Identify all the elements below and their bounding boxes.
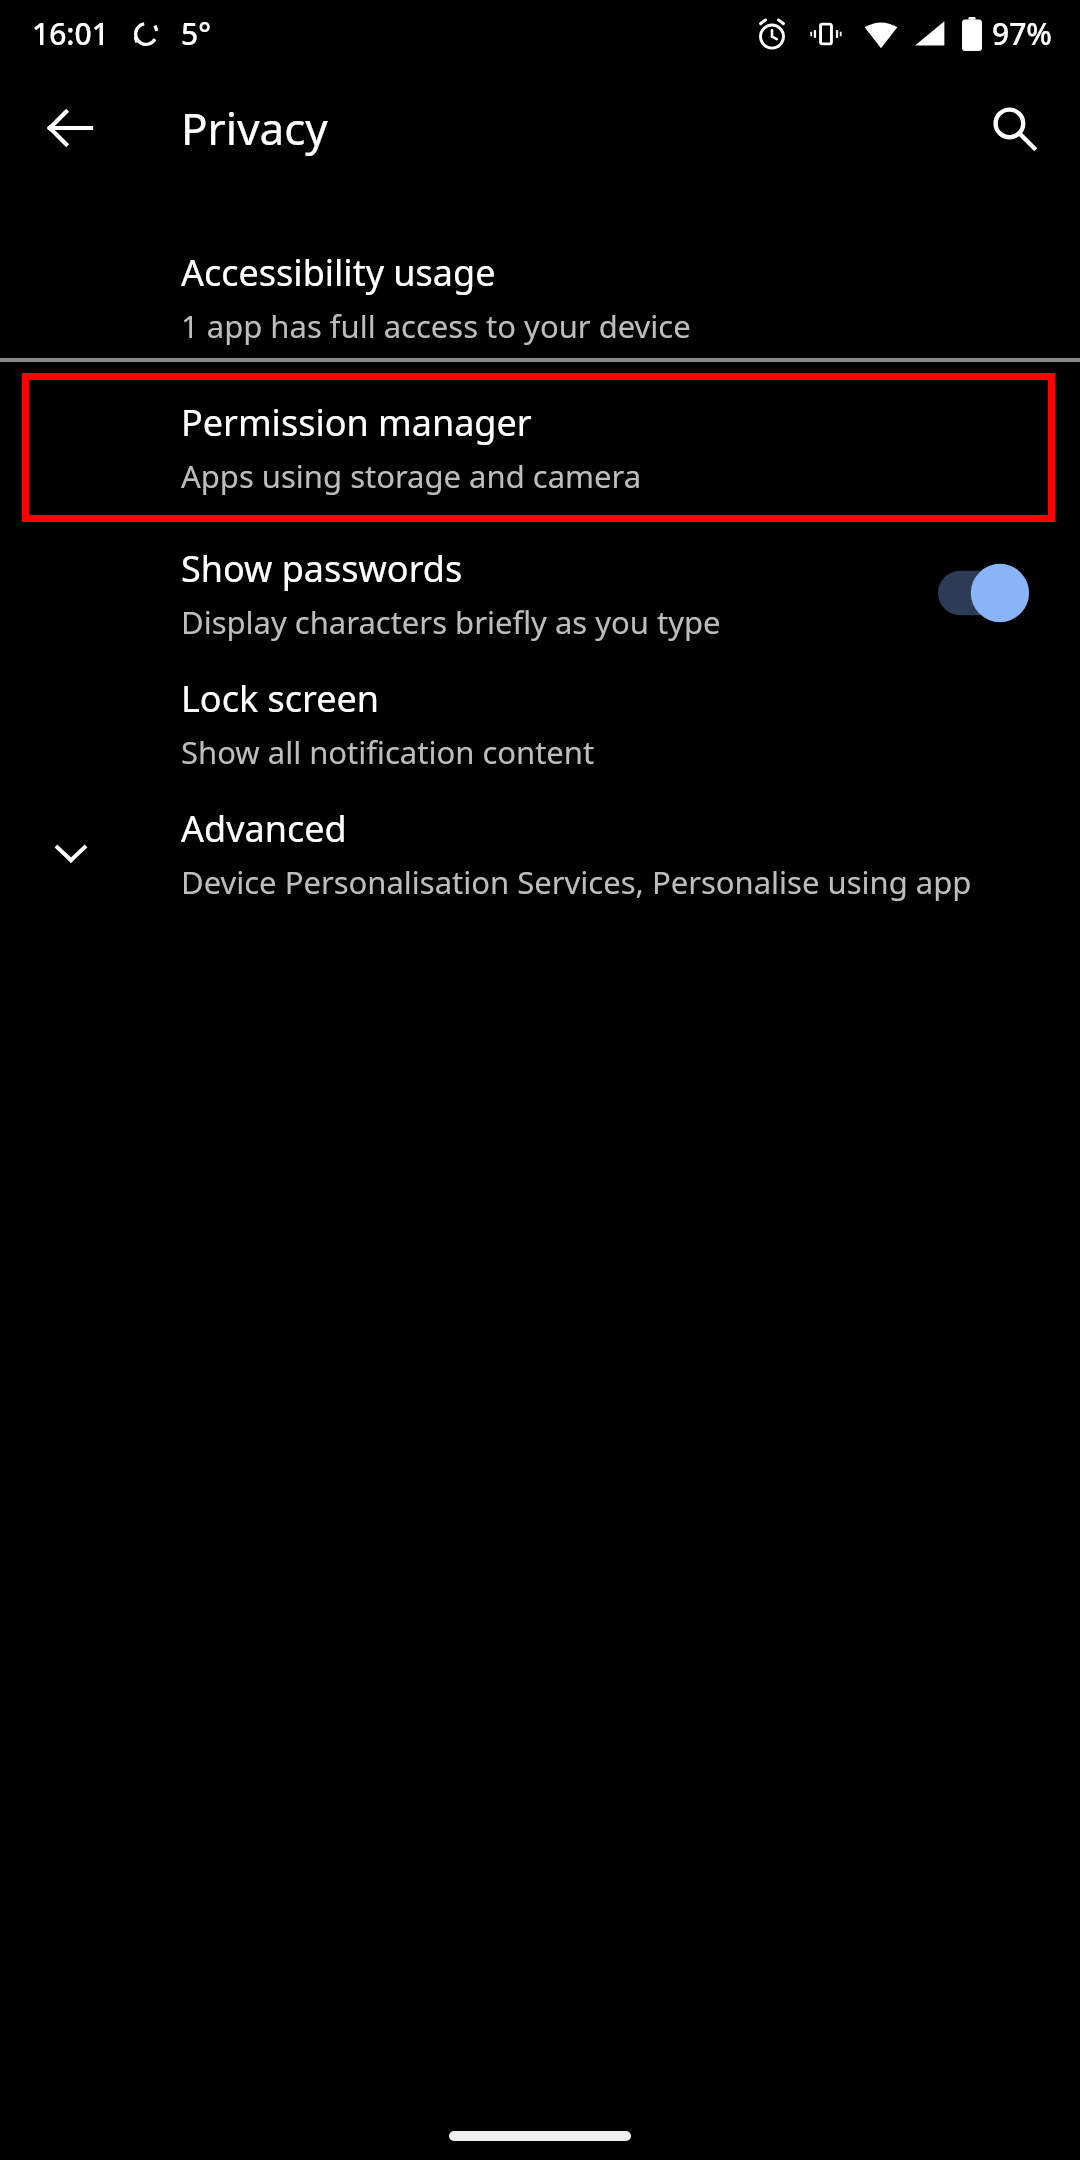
staticText: Privacy	[181, 98, 328, 158]
button[interactable]: Accessibility usage	[0, 236, 1080, 358]
staticText: Permission manager	[181, 398, 532, 447]
button[interactable]: Show passwords toggle	[938, 562, 1030, 624]
staticText: 5°	[181, 13, 211, 54]
staticText: Accessibility usage	[181, 248, 496, 297]
staticText: Device Personalisation Services, Persona…	[181, 861, 1050, 903]
staticText: Apps using storage and camera	[181, 455, 642, 497]
button[interactable]: Lock screen	[0, 658, 1080, 788]
staticText: Advanced	[181, 804, 347, 853]
button[interactable]: Advanced	[0, 788, 1080, 918]
staticText: Show all notification content	[181, 731, 595, 773]
staticText: 97%	[992, 13, 1052, 54]
button[interactable]: Show passwords	[0, 528, 1080, 658]
staticText: 16:01	[32, 13, 109, 54]
staticText: Lock screen	[181, 674, 380, 723]
staticText: Display characters briefly as you type	[181, 601, 721, 643]
staticText: 1 app has full access to your device	[181, 305, 691, 347]
staticText: Show passwords	[181, 544, 463, 593]
button[interactable]: Permission manager	[22, 373, 1055, 522]
button[interactable]: Search	[966, 80, 1062, 176]
button[interactable]: Back	[22, 80, 118, 176]
